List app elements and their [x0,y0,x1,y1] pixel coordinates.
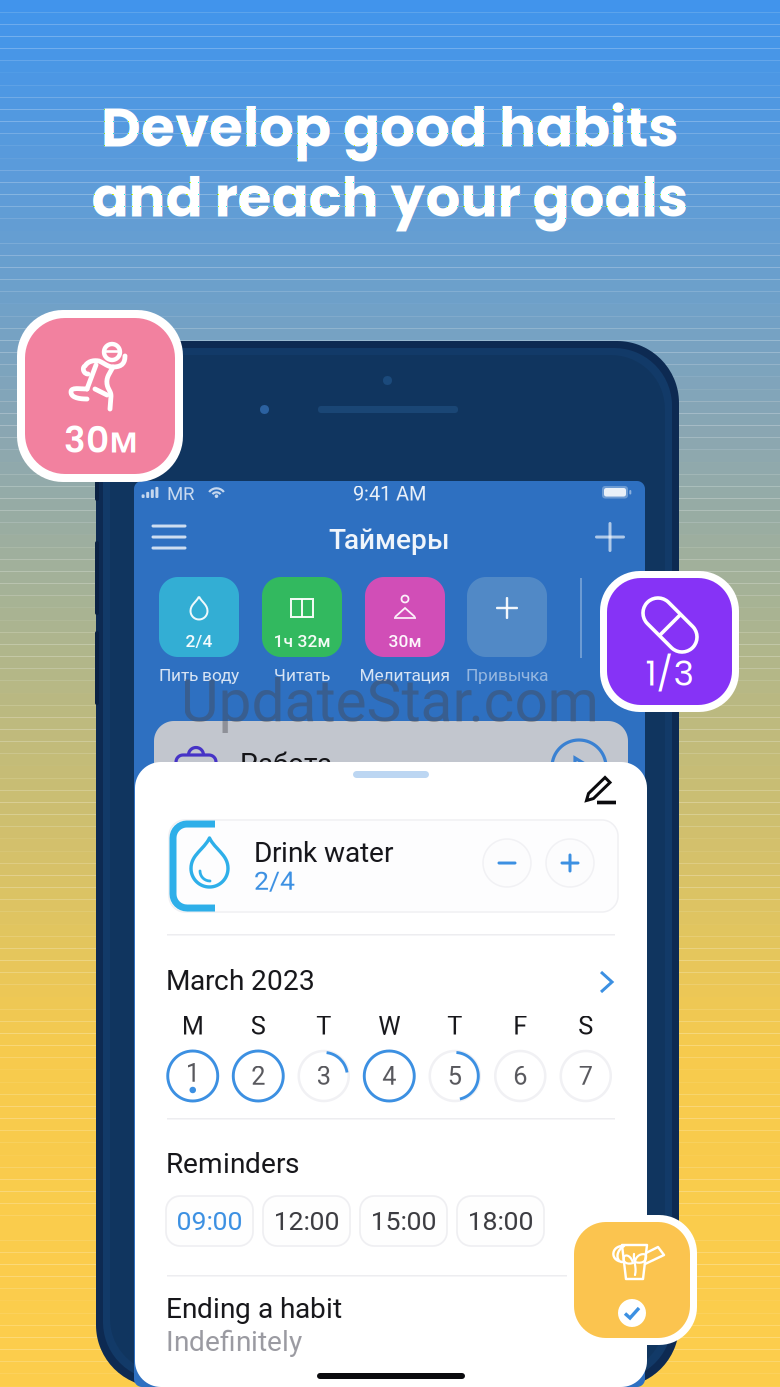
staticText: Мелитация [359,665,450,685]
staticText: F [513,1011,527,1041]
button[interactable]: 12:00 [263,1196,350,1246]
staticText: T [316,1011,331,1041]
staticText: Пить воду [159,665,239,685]
button[interactable]: Menu [145,517,193,557]
staticText: 5 [448,1061,462,1091]
button[interactable]: 18:00 [457,1196,544,1246]
staticText: T [447,1011,462,1041]
staticText: Таймеры [329,523,450,556]
staticText: 09:00 [176,1205,242,1237]
staticText: March 2023 [166,964,315,997]
staticText: Develop good habits [101,89,679,165]
staticText: W [378,1011,400,1041]
staticText: Indefinitely [166,1325,302,1358]
staticText: 12:00 [273,1205,339,1237]
staticText: 3 [317,1061,331,1091]
staticText: S [251,1011,266,1041]
staticText: 7 [579,1061,593,1091]
staticText: 4 [382,1061,396,1091]
staticText: M [182,1011,204,1041]
staticText: 6 [513,1061,527,1091]
staticText: 2/4 [254,865,295,896]
staticText: 2/4 [185,631,212,651]
staticText: 18:00 [467,1205,533,1237]
staticText: MR [167,483,195,505]
staticText: 15:00 [370,1205,436,1237]
staticText: UpdateStar.com [180,667,598,736]
staticText: 1 [186,1058,200,1088]
staticText: Привычка [466,665,548,685]
staticText: Ending a habit [166,1292,342,1325]
staticText: 30м [64,414,138,465]
button[interactable]: Increase [546,839,594,887]
staticText: 1/3 [645,649,693,697]
button[interactable]: 09:00 [166,1196,253,1246]
button[interactable]: Add [586,515,634,559]
staticText: 2 [251,1061,265,1091]
staticText: Читать [274,665,330,685]
button[interactable]: Next month [590,965,624,999]
staticText: Reminders [166,1147,299,1180]
button[interactable]: Decrease [483,839,531,887]
staticText: 9:41 AM [353,482,426,505]
staticText: 1ч 32м [273,631,330,651]
staticText: Drink water [254,836,393,869]
button[interactable]: Edit [581,771,625,813]
button[interactable]: 15:00 [360,1196,447,1246]
staticText: S [578,1011,593,1041]
staticText: and reach your goals [91,159,688,235]
staticText: 30м [388,631,421,651]
staticText: Работа [240,747,332,780]
